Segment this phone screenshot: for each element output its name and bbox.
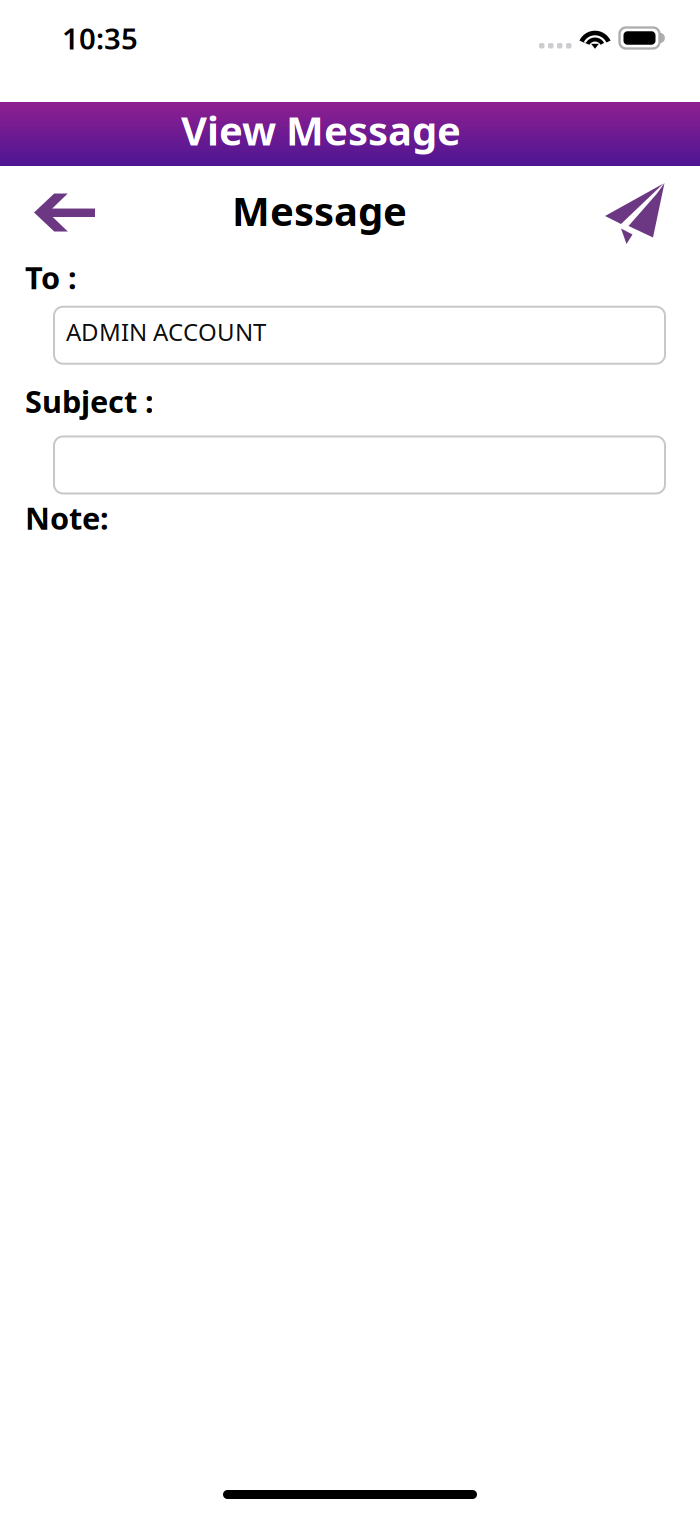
button[interactable]: Back: [0, 170, 113, 245]
staticText: Note:: [25, 497, 109, 538]
staticText: Message: [232, 184, 407, 237]
button[interactable]: Subject: [54, 436, 665, 493]
staticText: 10:35: [62, 18, 138, 57]
staticText: ADMIN ACCOUNT: [66, 316, 266, 348]
staticText: To :: [25, 257, 77, 298]
button[interactable]: Send: [605, 166, 700, 249]
button[interactable]: To: [54, 307, 665, 364]
staticText: Subject :: [25, 381, 154, 421]
staticText: View Message: [181, 103, 461, 156]
